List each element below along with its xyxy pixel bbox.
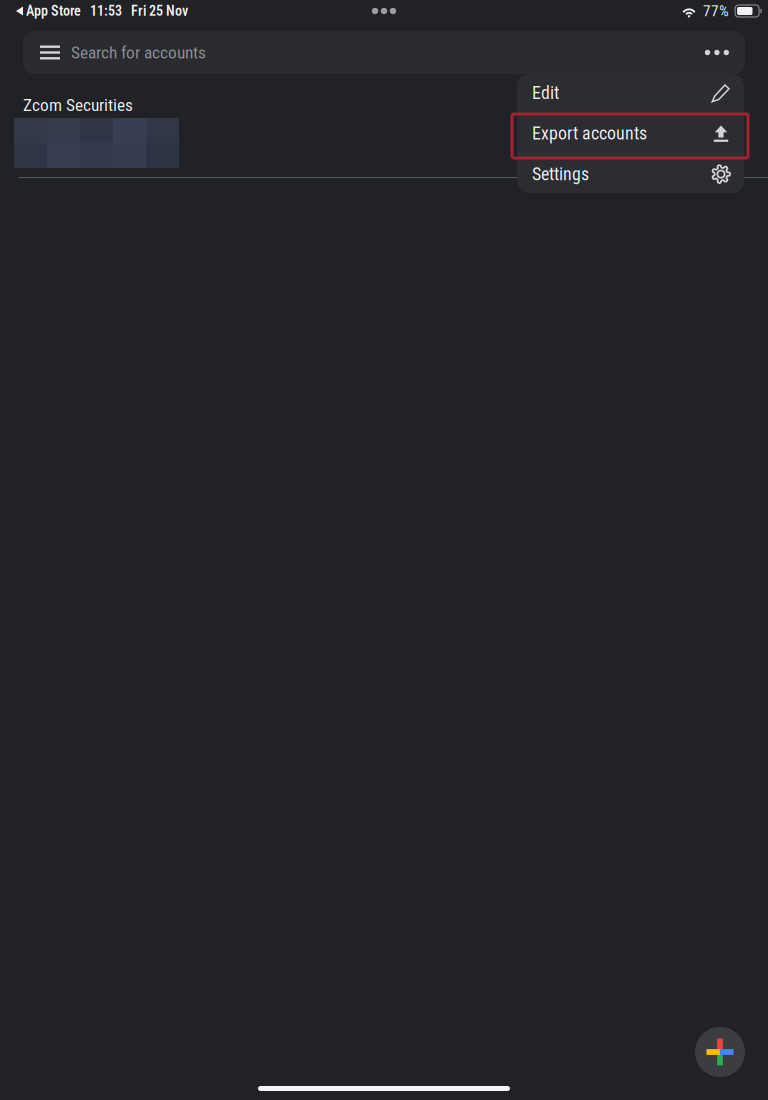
button[interactable]: Export accounts bbox=[517, 113, 744, 153]
button[interactable]: Add account bbox=[695, 1027, 745, 1077]
staticText: Edit bbox=[532, 82, 559, 103]
staticText: Export accounts bbox=[532, 123, 647, 144]
staticText: 77% bbox=[703, 2, 729, 20]
staticText: 11:53 bbox=[81, 3, 122, 19]
staticText: Settings bbox=[532, 164, 589, 184]
staticText: Zcom Securities bbox=[23, 95, 133, 115]
button[interactable]: Search for accounts bbox=[23, 31, 745, 74]
staticText: Fri 25 Nov bbox=[122, 3, 188, 19]
button[interactable]: Settings bbox=[517, 154, 744, 194]
staticText: Search for accounts bbox=[71, 42, 206, 63]
button[interactable]: Edit bbox=[517, 73, 744, 113]
staticText: App Store bbox=[23, 3, 81, 19]
